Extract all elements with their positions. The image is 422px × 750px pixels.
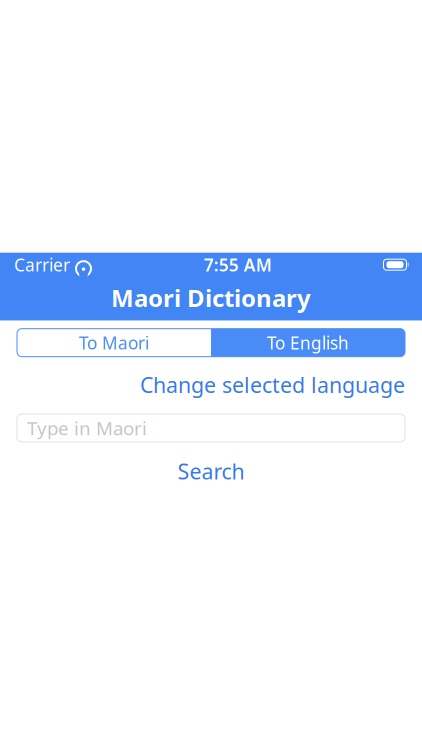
staticText: Change selected language: [140, 371, 405, 399]
staticText: Type in Maori: [27, 416, 147, 440]
staticText: Carrier: [14, 253, 70, 276]
staticText: Maori Dictionary: [111, 282, 311, 314]
button[interactable]: To English: [211, 329, 405, 357]
button[interactable]: Change selected language: [140, 367, 405, 403]
staticText: 7:55 AM: [204, 253, 272, 276]
staticText: Search: [177, 457, 244, 485]
staticText: To English: [267, 331, 349, 354]
staticText: To Maori: [79, 331, 149, 354]
button[interactable]: To Maori: [17, 329, 211, 357]
button[interactable]: Search: [0, 453, 422, 489]
